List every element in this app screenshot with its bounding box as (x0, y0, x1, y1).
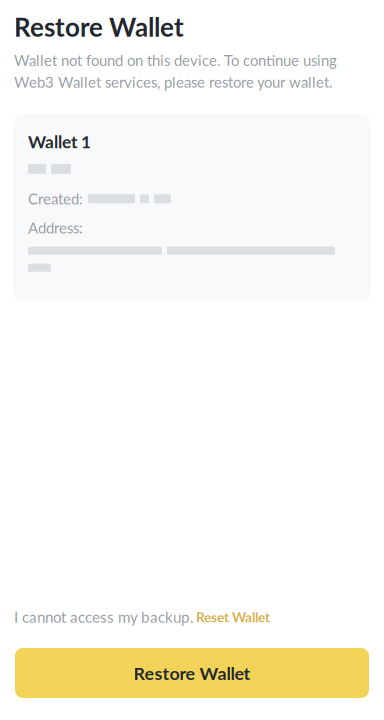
button[interactable]: Reset Wallet (196, 609, 270, 625)
staticText: I cannot access my backup. (14, 608, 194, 626)
staticText: Wallet not found on this device. To cont… (14, 51, 337, 69)
staticText: Wallet 1 (28, 131, 91, 152)
staticText: Restore Wallet (14, 11, 184, 42)
staticText: Web3 Wallet services, please restore you… (14, 73, 333, 91)
staticText: Restore Wallet (133, 662, 250, 684)
button[interactable]: Restore Wallet (15, 648, 369, 698)
staticText: Address: (28, 219, 83, 237)
staticText: Reset Wallet (196, 609, 270, 625)
staticText: Created: (28, 190, 83, 208)
